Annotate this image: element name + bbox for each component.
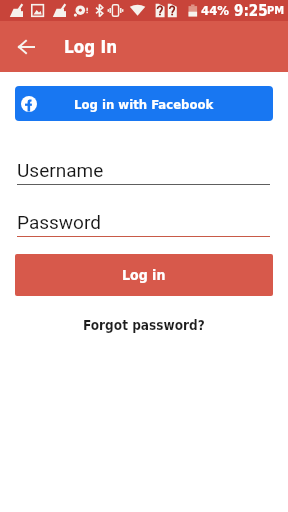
button[interactable]: Log in with Facebook [15, 86, 273, 121]
button[interactable]: Password [17, 211, 270, 237]
staticText: Username [17, 159, 104, 181]
button[interactable]: Back [6, 21, 46, 72]
staticText: Log in [122, 267, 166, 283]
staticText: Log In [64, 37, 118, 57]
button[interactable]: Log in [15, 254, 273, 296]
staticText: Log in with Facebook [74, 97, 214, 112]
button[interactable]: Forgot password? [75, 314, 213, 336]
staticText: Forgot password? [83, 317, 205, 333]
staticText: Password [17, 211, 101, 233]
staticText: 9:25 [234, 2, 268, 19]
staticText: PM [267, 4, 285, 17]
button[interactable]: Username [17, 159, 270, 185]
staticText: 44% [201, 3, 229, 18]
